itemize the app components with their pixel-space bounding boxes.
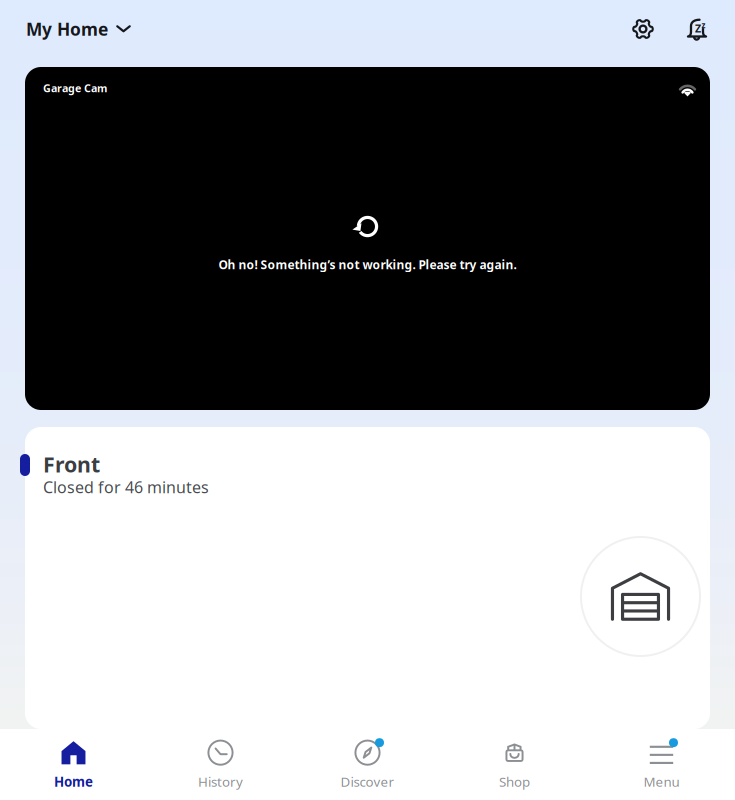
button[interactable]: Discover <box>294 732 441 798</box>
staticText: Home <box>54 773 93 790</box>
staticText: Menu <box>643 773 679 790</box>
staticText: Closed for 46 minutes <box>43 476 209 497</box>
staticText: Shop <box>499 773 530 790</box>
button[interactable]: Settings <box>631 17 655 41</box>
staticText: Z <box>695 21 701 35</box>
button[interactable]: Menu <box>588 732 735 798</box>
staticText: History <box>198 773 243 790</box>
button[interactable]: History <box>147 732 294 798</box>
staticText: Garage Cam <box>43 81 107 95</box>
staticText: Front <box>43 450 100 478</box>
button[interactable]: My Home <box>26 17 131 40</box>
staticText: Oh no! Something’s not working. Please t… <box>218 256 516 272</box>
button[interactable]: Shop <box>441 732 588 798</box>
button[interactable]: Notifications snoozed <box>684 16 709 41</box>
staticText: Discover <box>340 773 394 790</box>
staticText: z <box>701 20 705 30</box>
staticText: My Home <box>26 17 108 40</box>
button[interactable]: Home <box>0 732 147 798</box>
